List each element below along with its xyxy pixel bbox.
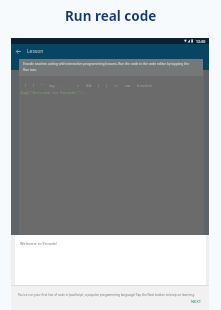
staticText: ( (25, 83, 27, 88)
button[interactable]: = (74, 83, 83, 88)
staticText: log (49, 83, 55, 88)
staticText: " (41, 83, 43, 88)
button[interactable]: log (46, 83, 58, 88)
staticText: = (77, 83, 80, 88)
staticText: Encode teaches coding with interactive p… (23, 62, 194, 72)
staticText: <> (114, 83, 119, 88)
staticText: { (98, 83, 100, 88)
staticText: log("Welcome to Encode!"); (20, 90, 86, 96)
staticText: Welcome to Encode! (20, 241, 57, 246)
button[interactable]: <> (111, 83, 122, 88)
button[interactable]: ) (30, 83, 38, 88)
staticText: You've run your first line of code in Ja… (18, 293, 195, 297)
button[interactable]: var (122, 83, 134, 88)
staticText: var (125, 83, 131, 88)
button[interactable]: " (38, 83, 46, 88)
button[interactable]: function (134, 83, 155, 88)
staticText: NEXT (191, 299, 202, 304)
button[interactable]: Back (14, 47, 23, 56)
button[interactable]: && (83, 83, 95, 88)
button[interactable]: } (103, 83, 111, 88)
staticText: function (137, 83, 152, 88)
button[interactable]: NEXT (184, 298, 209, 305)
staticText: && (86, 83, 92, 88)
staticText: 12:30 (196, 39, 206, 44)
button[interactable]: { (95, 83, 103, 88)
staticText: , (61, 83, 63, 88)
staticText: } (106, 83, 108, 88)
staticText: ) (33, 83, 35, 88)
staticText: . (69, 83, 71, 88)
button[interactable]: ( (22, 83, 30, 88)
staticText: Run real code (65, 7, 157, 25)
staticText: Lesson (27, 48, 44, 55)
